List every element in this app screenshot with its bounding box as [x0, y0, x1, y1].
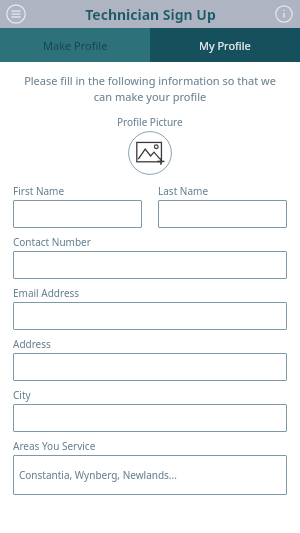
button[interactable]: Information [272, 2, 296, 26]
staticText: Address [13, 337, 51, 351]
staticText: Last Name [158, 184, 209, 198]
staticText: Profile Picture [117, 115, 183, 129]
button[interactable] [13, 353, 287, 381]
staticText: Technician Sign Up [85, 5, 216, 24]
button[interactable]: My Profile [150, 28, 300, 62]
button[interactable] [13, 404, 287, 432]
staticText: Areas You Service [13, 439, 96, 453]
staticText: My Profile [199, 38, 251, 53]
button[interactable] [158, 200, 287, 228]
button[interactable]: Make Profile [0, 28, 150, 62]
staticText: Constantia, Wynberg, Newlands... [19, 468, 177, 482]
staticText: City [13, 388, 31, 402]
staticText: First Name [13, 184, 65, 198]
button[interactable]: Add profile picture [128, 131, 172, 175]
button[interactable] [13, 302, 287, 330]
staticText: Make Profile [43, 38, 108, 53]
staticText: Contact Number [13, 235, 91, 249]
button[interactable] [13, 200, 142, 228]
button[interactable]: Constantia, Wynberg, Newlands... [13, 455, 287, 495]
staticText: Email Address [13, 286, 80, 300]
button[interactable]: Menu [4, 2, 28, 26]
staticText: Please fill in the following information… [16, 73, 284, 104]
button[interactable] [13, 251, 287, 279]
